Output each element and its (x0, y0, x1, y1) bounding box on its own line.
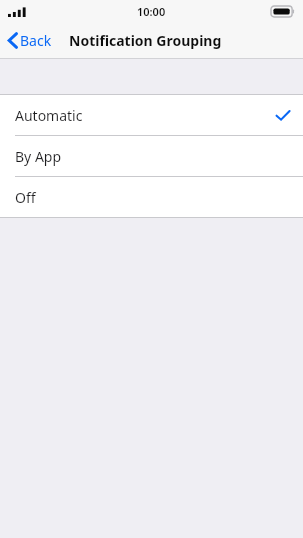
button[interactable]: Back (6, 27, 54, 54)
button[interactable]: Automatic (0, 95, 303, 135)
staticText: Notification Grouping (69, 31, 222, 50)
staticText: By App (15, 147, 62, 166)
staticText: Off (15, 188, 36, 207)
staticText: Back (20, 31, 52, 50)
staticText: 10:00 (137, 4, 166, 19)
staticText: Automatic (15, 106, 83, 125)
other: Selected (276, 110, 290, 121)
button[interactable]: Off (0, 177, 303, 217)
button[interactable]: By App (0, 136, 303, 176)
